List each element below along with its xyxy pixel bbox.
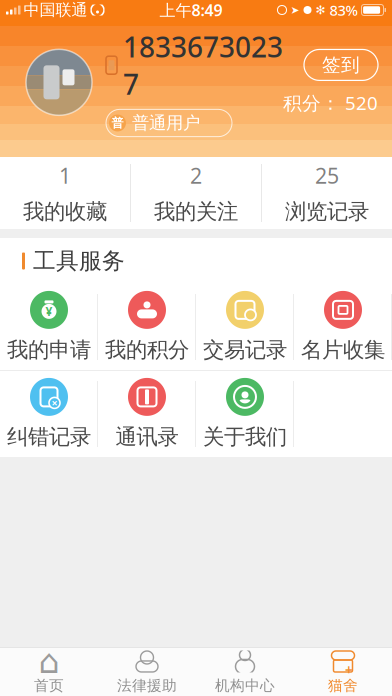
- staticText: 交易记录: [203, 337, 287, 363]
- staticText: 工具服务: [33, 247, 125, 275]
- staticText: 首页: [34, 676, 64, 694]
- staticText: 我的收藏: [23, 199, 107, 225]
- staticText: 名片收集: [301, 337, 385, 363]
- button[interactable]: 25: [262, 157, 392, 229]
- staticText: ⌂: [38, 643, 59, 680]
- staticText: 我的积分: [105, 337, 189, 363]
- button[interactable]: +: [294, 648, 392, 696]
- staticText: 普: [111, 116, 123, 130]
- staticText: 83%: [329, 0, 357, 20]
- button[interactable]: ¥: [0, 284, 98, 370]
- staticText: 纠错记录: [7, 424, 91, 450]
- staticText: ¥: [45, 303, 52, 319]
- button[interactable]: 签到: [304, 49, 378, 80]
- button[interactable]: 交易记录: [196, 284, 294, 370]
- button[interactable]: 2: [131, 157, 261, 229]
- staticText: 积分： 520: [283, 90, 378, 115]
- staticText: 我的关注: [154, 199, 238, 225]
- staticText: ✻: [315, 3, 325, 17]
- staticText: 浏览记录: [285, 199, 369, 225]
- staticText: 上午8:49: [159, 0, 222, 21]
- button[interactable]: 关于我们: [196, 371, 294, 457]
- staticText: 中国联通: [23, 0, 87, 20]
- button[interactable]: ×: [0, 371, 98, 457]
- button[interactable]: 法律援助: [98, 648, 196, 696]
- button[interactable]: ⌂: [0, 648, 98, 696]
- staticText: 18336730237: [123, 28, 283, 102]
- staticText: 机构中心: [215, 676, 275, 694]
- button[interactable]: 我的积分: [98, 284, 196, 370]
- button[interactable]: 名片收集: [294, 284, 392, 370]
- staticText: 2: [190, 161, 202, 189]
- staticText: 法律援助: [117, 676, 177, 694]
- staticText: +: [345, 661, 353, 679]
- button[interactable]: 机构中心: [196, 648, 294, 696]
- staticText: 关于我们: [203, 424, 287, 450]
- staticText: 普通用户: [132, 112, 200, 134]
- staticText: 我的申请: [7, 337, 91, 363]
- staticText: ➤: [290, 4, 299, 16]
- button[interactable]: 1: [0, 157, 130, 229]
- button[interactable]: 通讯录: [98, 371, 196, 457]
- staticText: 1: [59, 161, 71, 189]
- staticText: 签到: [322, 53, 360, 76]
- staticText: 25: [315, 161, 339, 189]
- staticText: ×: [51, 396, 57, 410]
- staticText: 通讯录: [115, 424, 178, 450]
- staticText: 猫舍: [328, 676, 358, 694]
